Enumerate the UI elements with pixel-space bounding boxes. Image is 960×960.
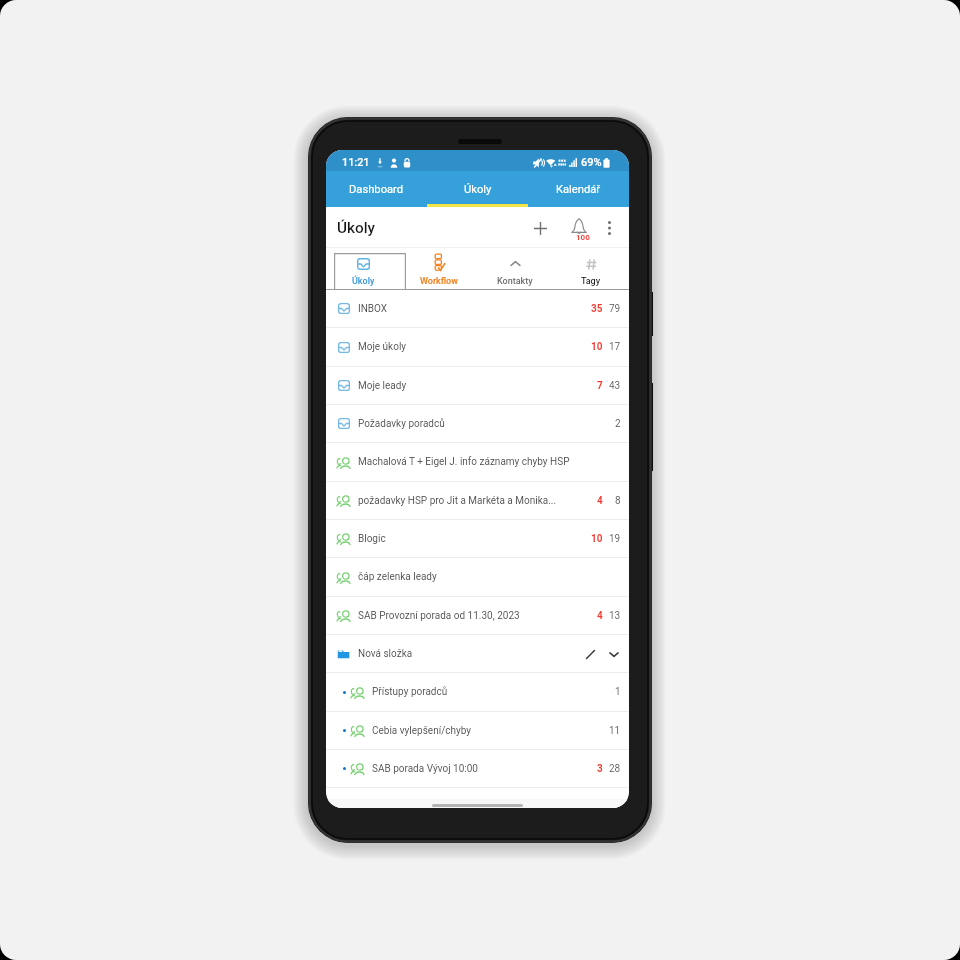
staticText: Přístupy poradců [372,686,581,698]
staticText: 10 [591,533,603,545]
button[interactable]: INBOX [326,290,629,328]
button[interactable]: Notifications [565,210,593,246]
staticText: požadavky HSP pro Jit a Markéta a Monika… [358,495,581,507]
button[interactable]: Tagy [553,248,629,290]
button[interactable]: Kontakty [477,248,553,290]
button[interactable]: požadavky HSP pro Jit a Markéta a Monika… [326,482,629,520]
button[interactable]: SAB Provozní porada od 11.30, 2023 [326,597,629,635]
staticText: 11:21 [342,156,370,169]
staticText: 8 [615,495,621,507]
staticText: Tagy [581,276,601,287]
staticText: 7 [597,380,603,392]
button[interactable]: Dashboard [326,171,427,207]
button[interactable]: SAB porada Vývoj 10:00 [326,750,629,788]
staticText: Požadavky poradců [358,418,581,430]
button[interactable]: Přístupy poradců [326,673,629,712]
button[interactable]: Kalendář [528,171,629,207]
button[interactable]: Moje úkoly [326,328,629,367]
button[interactable]: Add [526,210,554,246]
staticText: Dashboard [349,183,404,196]
button[interactable]: Úkoly [326,248,401,290]
staticText: 28 [609,763,621,775]
button[interactable]: Požadavky poradců [326,405,629,443]
staticText: 10 [591,341,603,353]
button[interactable]: More options [595,210,623,246]
staticText: 3 [597,763,603,775]
staticText: Kalendář [556,183,601,196]
staticText: 17 [609,341,621,353]
staticText: SAB Provozní porada od 11.30, 2023 [358,610,581,622]
staticText: 100 [576,233,590,242]
staticText: 13 [609,610,621,622]
staticText: 4 [597,610,603,622]
staticText: čáp zelenka leady [358,571,581,583]
staticText: Blogic [358,533,581,545]
staticText: Workflow [420,276,458,287]
staticText: INBOX [358,303,581,315]
staticText: Úkoly [464,183,492,196]
staticText: 4 [597,495,603,507]
staticText: 79 [609,303,621,315]
staticText: Moje leady [358,380,581,392]
button[interactable]: Edit folder [580,644,600,664]
button[interactable]: Moje leady [326,367,629,405]
button[interactable]: čáp zelenka leady [326,558,629,597]
staticText: 11 [609,725,621,737]
staticText: Kontakty [497,276,533,287]
staticText: 2 [615,418,621,430]
staticText: Moje úkoly [358,341,581,353]
button[interactable]: Workflow [401,248,477,290]
staticText: Cebia vylepšení/chyby [372,725,581,737]
staticText: Nová složka [358,648,576,660]
staticText: 43 [609,380,621,392]
staticText: 19 [609,533,621,545]
button[interactable]: Cebia vylepšení/chyby [326,712,629,750]
staticText: 69% [581,156,602,169]
staticText: 1 [615,686,621,698]
staticText: Machalová T + Eigel J. info záznamy chyb… [358,456,581,468]
staticText: 35 [591,303,603,315]
button[interactable]: Úkoly [427,171,528,207]
staticText: SAB porada Vývoj 10:00 [372,763,581,775]
staticText: Úkoly [337,219,376,237]
button[interactable]: Nová složka [326,635,629,673]
button[interactable]: Blogic [326,520,629,558]
button[interactable]: Collapse folder [604,644,624,664]
button[interactable]: Machalová T + Eigel J. info záznamy chyb… [326,443,629,482]
staticText: Úkoly [352,276,375,287]
